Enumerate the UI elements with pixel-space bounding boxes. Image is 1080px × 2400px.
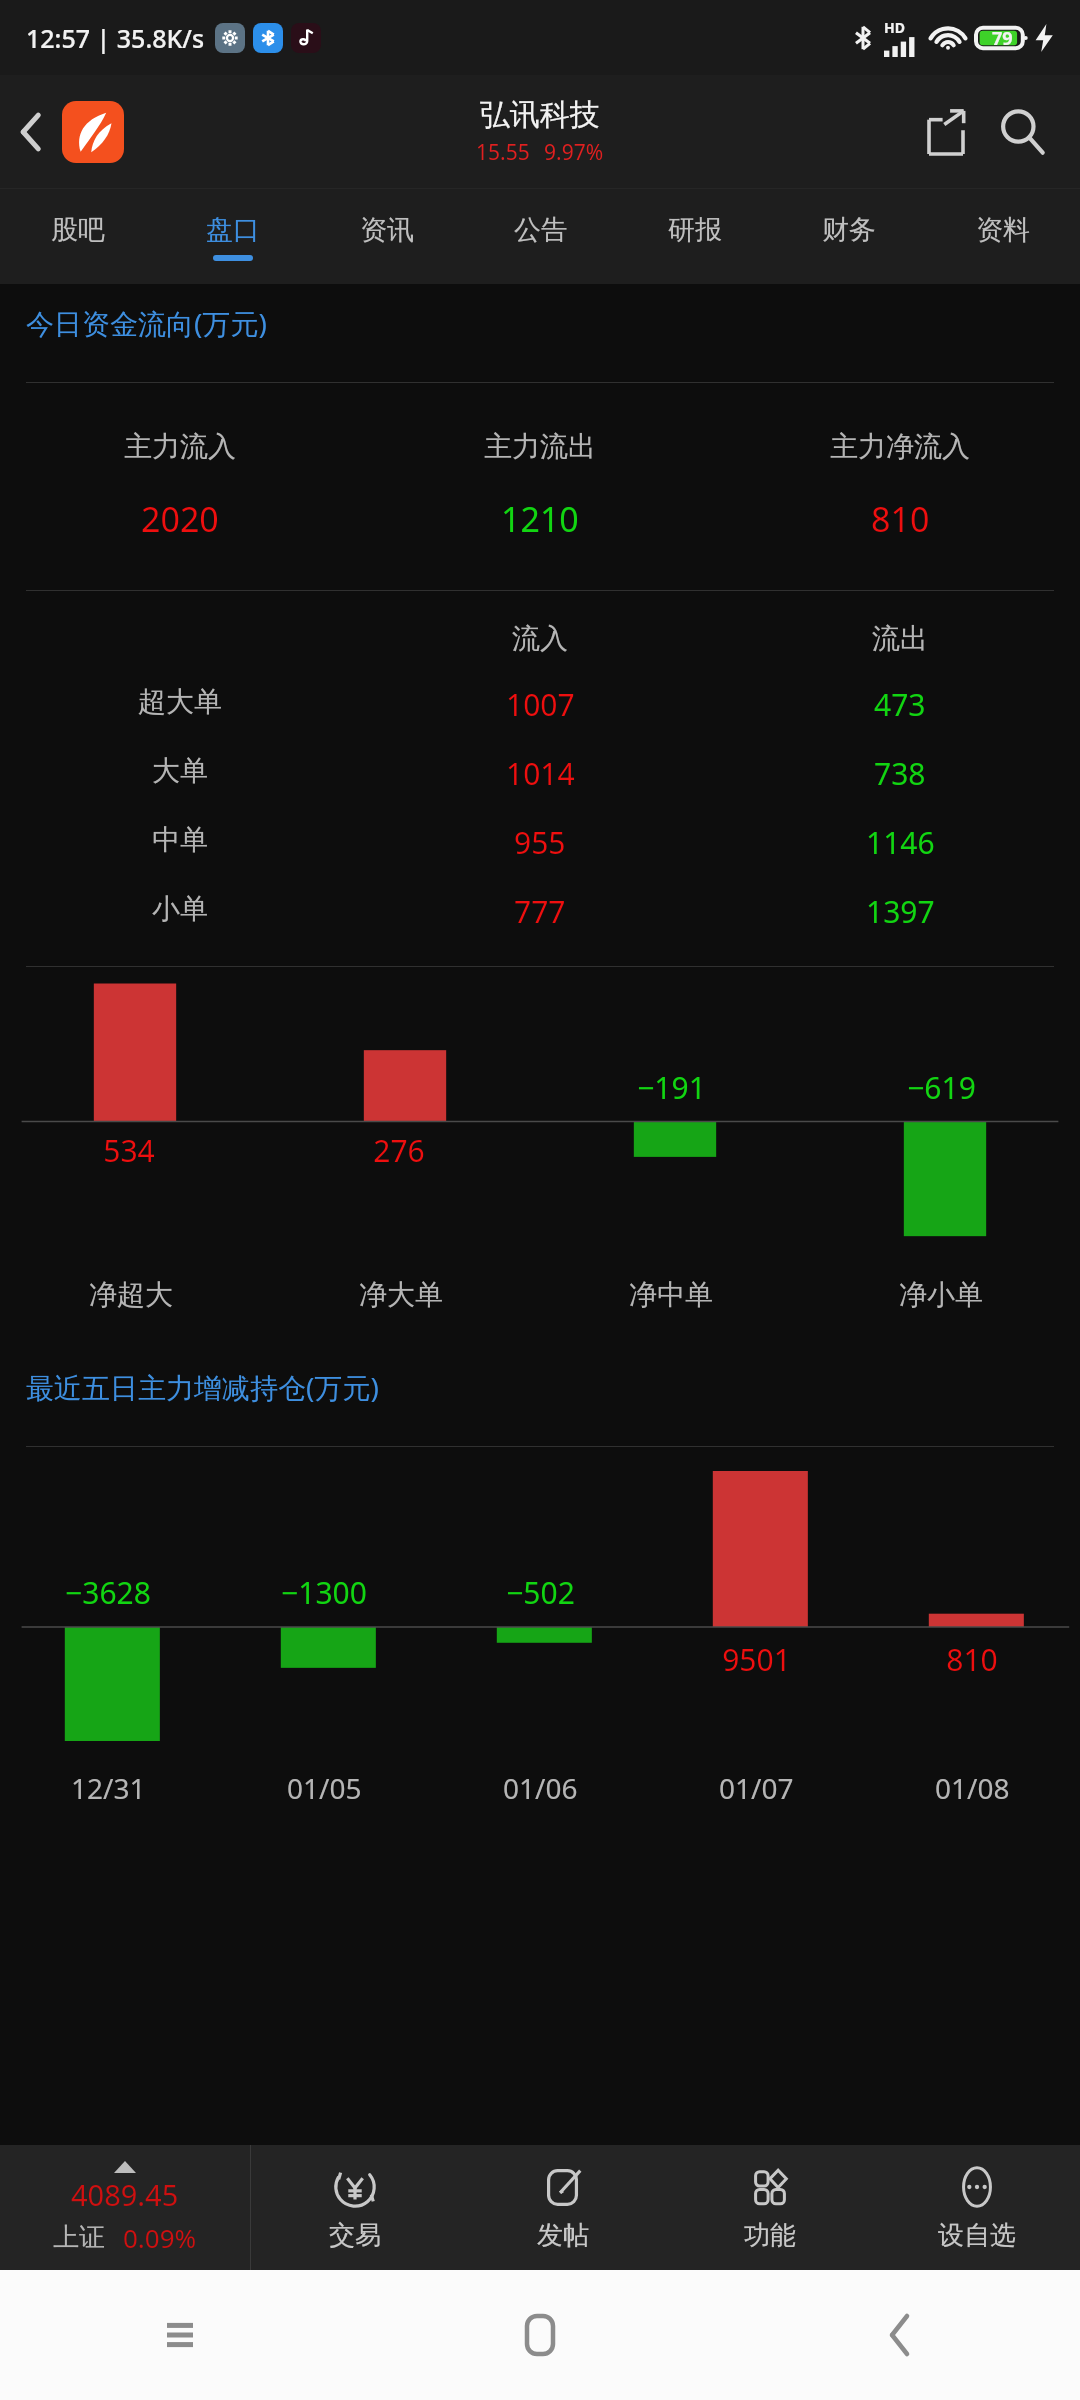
staticText: 流入 (512, 621, 568, 656)
staticText: 大单 (152, 753, 208, 788)
button[interactable]: Recents (0, 2270, 360, 2400)
staticText: 777 (514, 891, 566, 932)
staticText: 01/08 (935, 1769, 1010, 1807)
staticText: 01/06 (503, 1769, 578, 1807)
button[interactable]: 今日资金流向(万元) (26, 304, 1080, 342)
staticText: 810 (946, 1639, 998, 1680)
staticText: 盘口 (206, 213, 260, 247)
staticText: 534 (103, 1130, 155, 1171)
staticText: 473 (874, 684, 926, 725)
button[interactable]: App logo (62, 101, 124, 163)
staticText: 流出 (872, 621, 928, 656)
staticText: 1210 (501, 496, 579, 542)
staticText: 01/07 (719, 1769, 794, 1807)
staticText: 1007 (506, 684, 575, 725)
button[interactable]: 股吧 (0, 189, 155, 284)
staticText: 股吧 (51, 213, 105, 247)
staticText: 12:57 | 35.8K/s (26, 21, 205, 55)
staticText: 资料 (976, 213, 1030, 247)
staticText: 弘讯科技 (480, 96, 600, 134)
staticText: −191 (637, 1067, 706, 1108)
staticText: 净中单 (629, 1277, 713, 1312)
staticText: 净超大 (89, 1277, 173, 1312)
button[interactable]: 资料 (926, 189, 1080, 284)
staticText: 最近五日主力增减持仓(万元) (26, 1368, 379, 1406)
staticText: 主力流出 (484, 429, 596, 464)
button[interactable]: Back (720, 2270, 1080, 2400)
button[interactable]: Home (360, 2270, 720, 2400)
staticText: 738 (874, 753, 926, 794)
button[interactable]: 最近五日主力增减持仓(万元) (26, 1368, 1080, 1406)
staticText: 上证 (53, 2221, 105, 2254)
staticText: 12/31 (71, 1769, 146, 1807)
button[interactable]: 研报 (618, 189, 772, 284)
staticText: 15.55 (476, 138, 530, 167)
staticText: 中单 (152, 822, 208, 857)
staticText: 研报 (668, 213, 722, 247)
staticText: 今日资金流向(万元) (26, 304, 267, 342)
staticText: 1397 (866, 891, 935, 932)
staticText: 超大单 (138, 684, 222, 719)
staticText: 955 (514, 822, 566, 863)
staticText: 净大单 (359, 1277, 443, 1312)
staticText: 交易 (329, 2219, 381, 2252)
staticText: −3628 (65, 1572, 151, 1613)
staticText: 净小单 (899, 1277, 983, 1312)
button[interactable]: 资讯 (310, 189, 464, 284)
button[interactable]: Back (0, 101, 62, 163)
staticText: 1014 (506, 753, 575, 794)
staticText: −502 (506, 1572, 575, 1613)
staticText: 公告 (514, 213, 568, 247)
staticText: 主力净流入 (830, 429, 970, 464)
staticText: 4089.45 (71, 2175, 179, 2214)
staticText: 9.97% (544, 138, 604, 167)
button[interactable]: Share (908, 94, 984, 170)
button[interactable]: 盘口 (155, 189, 310, 284)
button[interactable]: 发帖 (459, 2145, 666, 2270)
button[interactable]: 交易 (251, 2145, 459, 2270)
button[interactable]: 功能 (666, 2145, 873, 2270)
staticText: −619 (907, 1067, 976, 1108)
staticText: 1146 (866, 822, 935, 863)
staticText: 810 (871, 496, 930, 542)
staticText: HD (884, 18, 905, 37)
staticText: 79 (992, 26, 1013, 51)
staticText: 9501 (722, 1639, 791, 1680)
staticText: 发帖 (537, 2219, 589, 2252)
button[interactable]: 4089.45 (0, 2145, 250, 2270)
button[interactable]: 设自选 (873, 2145, 1080, 2270)
staticText: 主力流入 (124, 429, 236, 464)
staticText: 财务 (822, 213, 876, 247)
staticText: 2020 (141, 496, 219, 542)
staticText: 01/05 (287, 1769, 362, 1807)
staticText: 小单 (152, 891, 208, 926)
staticText: 设自选 (938, 2219, 1016, 2252)
staticText: 0.09% (123, 2220, 197, 2255)
staticText: 资讯 (360, 213, 414, 247)
button[interactable]: 公告 (464, 189, 618, 284)
staticText: 276 (373, 1130, 425, 1171)
button[interactable]: Search (984, 94, 1060, 170)
staticText: −1300 (281, 1572, 367, 1613)
button[interactable]: 财务 (772, 189, 926, 284)
staticText: 功能 (744, 2219, 796, 2252)
